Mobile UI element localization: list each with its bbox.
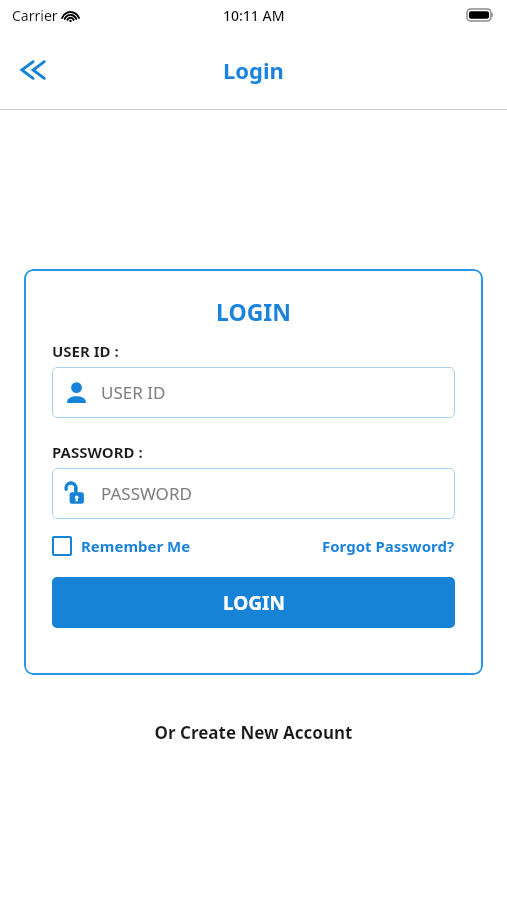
staticText: 10:11 AM (223, 6, 285, 25)
button[interactable]: USER ID (52, 367, 455, 418)
button[interactable]: PASSWORD (52, 468, 455, 519)
button[interactable]: Back (8, 46, 56, 94)
button[interactable]: Or Create New Account (0, 717, 507, 748)
staticText: PASSWORD (101, 482, 192, 505)
staticText: Remember Me (81, 536, 191, 556)
staticText: USER ID : (52, 341, 119, 361)
staticText: Carrier (12, 6, 58, 25)
staticText: USER ID (101, 381, 166, 404)
button[interactable]: Forgot Password? (322, 536, 455, 556)
button[interactable]: Remember Me (52, 536, 191, 556)
button[interactable]: LOGIN (52, 577, 455, 628)
staticText: PASSWORD : (52, 442, 143, 462)
staticText: Login (223, 55, 284, 85)
staticText: LOGIN (223, 590, 285, 616)
staticText: LOGIN (24, 296, 483, 327)
